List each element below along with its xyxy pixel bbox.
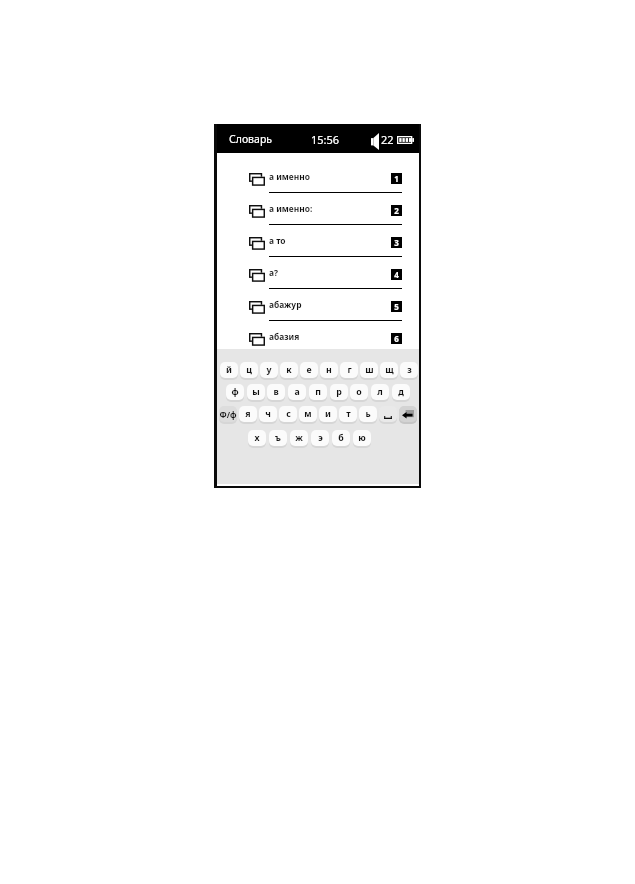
staticText: о <box>356 386 362 398</box>
button[interactable]: Ф/ф <box>219 406 237 422</box>
staticText: 5 <box>394 301 399 312</box>
button[interactable]: а то <box>243 227 401 259</box>
staticText: й <box>226 364 232 376</box>
staticText: ф <box>231 386 239 398</box>
staticText: 3 <box>394 237 399 248</box>
button[interactable]: я <box>239 406 257 422</box>
button[interactable]: ы <box>247 384 265 400</box>
staticText: абазия <box>269 331 300 342</box>
button[interactable]: ь <box>359 406 377 422</box>
button[interactable]: Словарь <box>217 124 419 153</box>
staticText: 4 <box>394 269 399 280</box>
button[interactable]: и <box>319 406 337 422</box>
staticText: у <box>266 364 272 376</box>
button[interactable]: ъ <box>269 430 287 446</box>
staticText: Словарь <box>229 132 272 146</box>
staticText: з <box>407 364 412 376</box>
staticText: г <box>347 364 352 376</box>
button[interactable]: т <box>339 406 357 422</box>
staticText: а именно: <box>269 203 313 214</box>
staticText: щ <box>385 364 394 376</box>
button[interactable]: а? <box>243 259 401 291</box>
staticText: д <box>398 386 404 398</box>
staticText: ц <box>246 364 252 376</box>
button[interactable]: о <box>350 384 368 400</box>
button[interactable]: л <box>371 384 389 400</box>
button[interactable]: а именно <box>243 163 401 195</box>
staticText: а то <box>269 235 286 246</box>
button[interactable]: ж <box>290 430 308 446</box>
button[interactable]: м <box>299 406 317 422</box>
staticText: ч <box>265 408 271 420</box>
staticText: т <box>346 408 351 420</box>
staticText: ъ <box>275 432 281 444</box>
staticText: в <box>273 386 279 398</box>
staticText: р <box>336 386 342 398</box>
staticText: ю <box>358 432 366 444</box>
button[interactable]: й <box>220 362 238 378</box>
button[interactable]: ф <box>226 384 244 400</box>
button[interactable]: х <box>248 430 266 446</box>
button[interactable]: ц <box>240 362 258 378</box>
button[interactable]: Backspace <box>399 406 417 422</box>
button[interactable]: ш <box>360 362 378 378</box>
staticText: ь <box>365 408 371 420</box>
staticText: н <box>326 364 332 376</box>
button[interactable]: г <box>340 362 358 378</box>
button[interactable]: а <box>288 384 306 400</box>
button[interactable]: е <box>300 362 318 378</box>
staticText: ш <box>365 364 374 376</box>
button[interactable]: а именно: <box>243 195 401 227</box>
staticText: к <box>286 364 292 376</box>
button[interactable]: у <box>260 362 278 378</box>
staticText: а именно <box>269 171 310 182</box>
button[interactable]: э <box>311 430 329 446</box>
staticText: с <box>286 408 291 420</box>
button[interactable]: абажур <box>243 291 401 323</box>
button[interactable]: Space <box>379 406 397 422</box>
staticText: 15:56 <box>311 132 340 147</box>
button[interactable]: б <box>332 430 350 446</box>
staticText: абажур <box>269 299 302 310</box>
button[interactable]: в <box>267 384 285 400</box>
staticText: 22 <box>381 132 394 147</box>
staticText: э <box>318 432 323 444</box>
staticText: л <box>377 386 383 398</box>
button[interactable]: с <box>279 406 297 422</box>
staticText: я <box>245 408 251 420</box>
staticText: б <box>338 432 344 444</box>
button[interactable]: щ <box>380 362 398 378</box>
button[interactable]: абазия <box>243 323 401 355</box>
button[interactable]: н <box>320 362 338 378</box>
staticText: п <box>315 386 321 398</box>
staticText: ж <box>295 432 303 444</box>
staticText: ы <box>252 386 260 398</box>
staticText: а <box>294 386 300 398</box>
staticText: 6 <box>394 333 399 344</box>
button[interactable]: р <box>330 384 348 400</box>
staticText: а? <box>269 267 279 278</box>
button[interactable]: д <box>392 384 410 400</box>
staticText: Ф/ф <box>219 409 237 420</box>
staticText: 1 <box>394 173 399 184</box>
staticText: е <box>306 364 312 376</box>
button[interactable]: ч <box>259 406 277 422</box>
button[interactable]: п <box>309 384 327 400</box>
staticText: и <box>325 408 331 420</box>
button[interactable]: ю <box>353 430 371 446</box>
staticText: х <box>254 432 260 444</box>
button[interactable]: з <box>400 362 418 378</box>
button[interactable]: к <box>280 362 298 378</box>
staticText: 2 <box>394 205 399 216</box>
staticText: м <box>304 408 312 420</box>
